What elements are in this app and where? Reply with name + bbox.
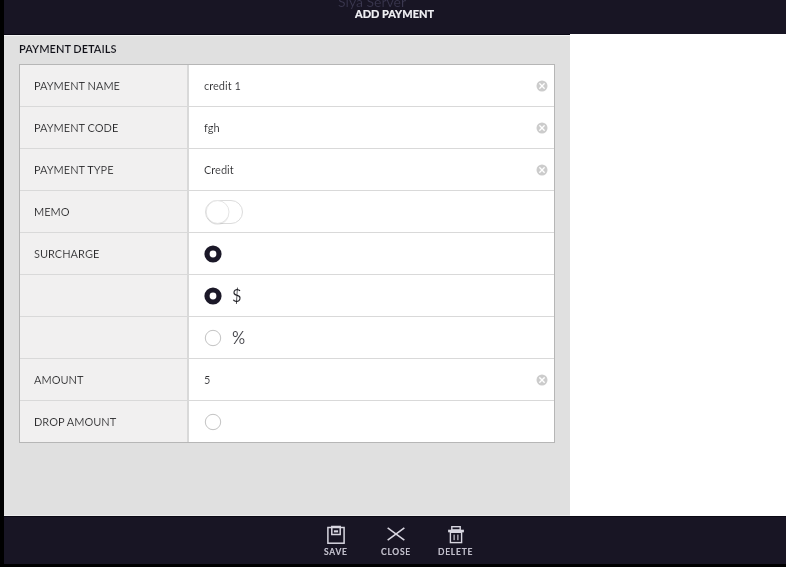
button[interactable]: AMOUNT xyxy=(20,359,554,400)
staticText: Credit xyxy=(204,163,234,176)
button[interactable]: Clear text xyxy=(531,117,553,139)
staticText: DELETE xyxy=(438,547,474,557)
button[interactable]: DROP AMOUNT xyxy=(20,401,554,442)
staticText: credit 1 xyxy=(204,79,241,92)
button[interactable]: Clear text xyxy=(531,369,553,391)
staticText: SURCHARGE xyxy=(34,247,100,260)
staticText: MEMO xyxy=(34,205,70,218)
staticText: PAYMENT TYPE xyxy=(34,163,114,176)
button[interactable]: PAYMENT CODE xyxy=(20,107,554,148)
staticText: Siya Server xyxy=(338,0,407,10)
button[interactable]: SAVE xyxy=(306,517,366,564)
button[interactable]: SURCHARGE xyxy=(20,233,554,274)
button[interactable]: Percent surcharge xyxy=(20,317,554,358)
staticText: ADD PAYMENT xyxy=(355,7,435,20)
staticText: PAYMENT NAME xyxy=(34,79,120,92)
button[interactable]: PAYMENT NAME xyxy=(20,65,554,106)
staticText: PAYMENT DETAILS xyxy=(19,42,117,55)
button[interactable]: Drop amount xyxy=(201,410,225,434)
button[interactable]: PAYMENT TYPE xyxy=(20,149,554,190)
staticText: CLOSE xyxy=(381,547,411,557)
staticText: $ xyxy=(232,286,242,306)
button[interactable]: DELETE xyxy=(426,517,486,564)
staticText: DROP AMOUNT xyxy=(34,415,117,428)
staticText: fgh xyxy=(204,121,220,134)
button[interactable]: Surcharge enabled xyxy=(201,242,225,266)
button[interactable]: Dollar surcharge xyxy=(20,275,554,316)
staticText: % xyxy=(232,328,246,348)
staticText: PAYMENT CODE xyxy=(34,121,119,134)
button[interactable]: Memo switch, off xyxy=(205,200,243,224)
button[interactable]: Dollar surcharge xyxy=(201,284,225,308)
button[interactable]: MEMO xyxy=(20,191,554,232)
button[interactable]: Clear text xyxy=(531,159,553,181)
button[interactable]: CLOSE xyxy=(366,517,426,564)
staticText: 5 xyxy=(204,373,211,386)
button[interactable]: Clear text xyxy=(531,75,553,97)
staticText: SAVE xyxy=(324,547,348,557)
staticText: AMOUNT xyxy=(34,373,84,386)
button[interactable]: Percent surcharge xyxy=(201,326,225,350)
